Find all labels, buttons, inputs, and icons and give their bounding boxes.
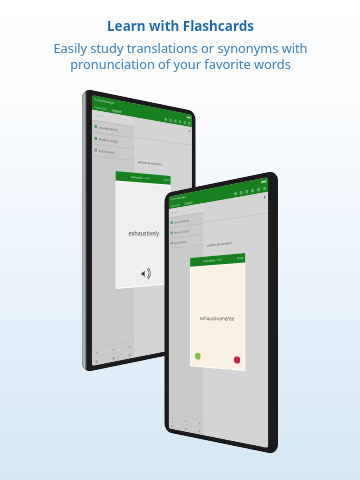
- staticText: Ready to Study: [174, 229, 189, 235]
- staticText: Search: [95, 113, 104, 119]
- button[interactable]: Toolbar action: [245, 189, 248, 194]
- button[interactable]: Toolbar action: [183, 121, 186, 125]
- staticText: Close: [237, 256, 244, 260]
- staticText: Search: [171, 210, 178, 215]
- button[interactable]: Toolbar action: [188, 122, 191, 125]
- button[interactable]: Pronounce: [141, 269, 148, 278]
- button[interactable]: System navigation: [198, 430, 201, 433]
- staticText: palabras de uso diaria: [207, 241, 232, 247]
- button[interactable]: System navigation: [128, 354, 131, 357]
- staticText: Flashcards - 1 of 1: [131, 175, 151, 180]
- button[interactable]: Toolbar action: [169, 118, 172, 122]
- staticText: palabras de uso diaria: [138, 160, 162, 166]
- staticText: exhaustively: [174, 240, 187, 245]
- button[interactable]: Toolbar action: [179, 120, 181, 124]
- button[interactable]: Navigation: [198, 422, 201, 425]
- staticText: Learned Words: [174, 219, 189, 224]
- button[interactable]: Learned Words: [169, 213, 204, 228]
- staticText: Flashcards - 1 of 1: [204, 258, 223, 263]
- button[interactable]: Navigation: [95, 351, 98, 355]
- button[interactable]: Navigation: [128, 345, 131, 348]
- button[interactable]: Toolbar action: [251, 188, 254, 193]
- button[interactable]: Ready to Study: [169, 224, 204, 238]
- staticText: English: [185, 200, 193, 206]
- button[interactable]: System navigation: [95, 360, 98, 363]
- staticText: Favorites: [171, 202, 181, 208]
- staticText: Vocab Manager: [171, 195, 187, 201]
- button[interactable]: Navigation: [171, 417, 173, 420]
- staticText: Vocab Manager: [94, 97, 115, 105]
- staticText: Ready to Study: [99, 137, 118, 144]
- staticText: exhaustively: [99, 149, 115, 155]
- button[interactable]: Toolbar action: [174, 119, 177, 123]
- button[interactable]: exhaustively: [92, 144, 134, 160]
- button[interactable]: Toolbar action: [263, 186, 266, 191]
- staticText: Favorites: [94, 104, 107, 111]
- staticText: Easily study translations or synonyms wi…: [53, 39, 308, 73]
- button[interactable]: exhaustively: [169, 234, 204, 248]
- button[interactable]: System navigation: [171, 425, 173, 428]
- staticText: exhaustively: [128, 229, 159, 238]
- button[interactable]: System navigation: [185, 427, 187, 430]
- button[interactable]: Navigation: [112, 348, 115, 351]
- staticText: Learned Words: [99, 126, 118, 132]
- button[interactable]: Toolbar action: [257, 187, 260, 192]
- button[interactable]: Toolbar action: [234, 192, 237, 196]
- button[interactable]: Toolbar action: [164, 117, 167, 121]
- staticText: Learn with Flashcards: [107, 17, 254, 35]
- button[interactable]: I know this word: [195, 353, 201, 360]
- button[interactable]: Ready to Study: [92, 132, 134, 149]
- button[interactable]: Toolbar action: [239, 190, 243, 195]
- button[interactable]: Navigation: [185, 419, 187, 422]
- button[interactable]: Learned Words: [92, 121, 134, 137]
- staticText: exhaustivamente: [200, 315, 235, 322]
- button[interactable]: I do not know this word: [234, 356, 240, 364]
- button[interactable]: System navigation: [112, 357, 115, 360]
- staticText: Close: [164, 178, 169, 182]
- staticText: English: [112, 108, 122, 114]
